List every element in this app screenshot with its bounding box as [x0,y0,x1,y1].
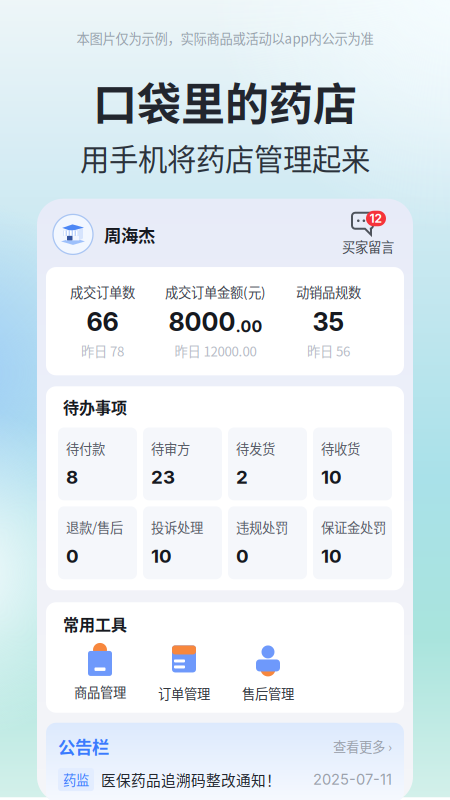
staticText: 售后管理 [242,683,294,703]
staticText: 用手机将药店管理起来 [80,136,370,179]
button[interactable]: 订单管理 [142,642,226,703]
staticText: 成交订单金额(元) [165,282,266,301]
staticText: 0 [66,545,79,567]
staticText: 昨日 56 [307,341,350,360]
staticText: 口袋里的药店 [93,70,357,133]
staticText: 待付款 [66,438,105,458]
button[interactable]: 投诉处理 [143,506,222,579]
button[interactable]: 待付款 [58,427,137,500]
button[interactable]: 待收货 [313,427,392,500]
staticText: 12 [369,211,382,226]
staticText: 待办事项 [63,395,127,418]
button[interactable]: 待审方 [143,427,222,500]
staticText: 昨日 78 [81,341,124,360]
staticText: 买家留言 [342,237,394,256]
staticText: 35 [312,306,344,337]
button[interactable]: 查看更多 › [333,737,392,756]
staticText: 66 [86,306,118,337]
staticText: 违规处罚 [236,517,288,537]
staticText: 保证金处罚 [321,517,386,537]
staticText: .00 [235,317,262,336]
staticText: 待发货 [236,438,275,458]
staticText: 待审方 [151,438,190,458]
staticText: 0 [236,545,249,567]
button[interactable]: 商品管理 [58,644,142,701]
staticText: 10 [321,545,342,567]
staticText: 2025-07-11 [313,771,392,788]
staticText: 订单管理 [158,683,210,703]
button[interactable]: 售后管理 [226,642,310,703]
staticText: 8 [66,466,78,488]
staticText: 本图片仅为示例，实际商品或活动以app内公示为准 [76,28,373,48]
staticText: 查看更多 › [333,737,392,756]
staticText: 商品管理 [74,682,126,701]
button[interactable]: 12 [342,213,394,256]
staticText: 2 [236,466,248,488]
staticText: 8000 [168,306,235,337]
staticText: 药监 [63,770,89,789]
staticText: 成交订单数 [70,282,135,301]
staticText: 常用工具 [63,612,127,635]
staticText: 医保药品追溯码整改通知！ [101,769,281,790]
staticText: 10 [151,545,172,567]
staticText: 投诉处理 [151,517,203,537]
button[interactable]: 违规处罚 [228,506,307,579]
staticText: 待收货 [321,438,360,458]
staticText: 退款/售后 [66,517,123,537]
button[interactable]: 待发货 [228,427,307,500]
staticText: 周海杰 [104,222,155,247]
staticText: 昨日 12000.00 [174,341,256,360]
staticText: 公告栏 [58,734,109,759]
staticText: 10 [321,466,342,488]
staticText: 动销品规数 [296,282,361,301]
button[interactable]: 保证金处罚 [313,506,392,579]
button[interactable]: 退款/售后 [58,506,137,579]
staticText: 23 [151,466,175,488]
